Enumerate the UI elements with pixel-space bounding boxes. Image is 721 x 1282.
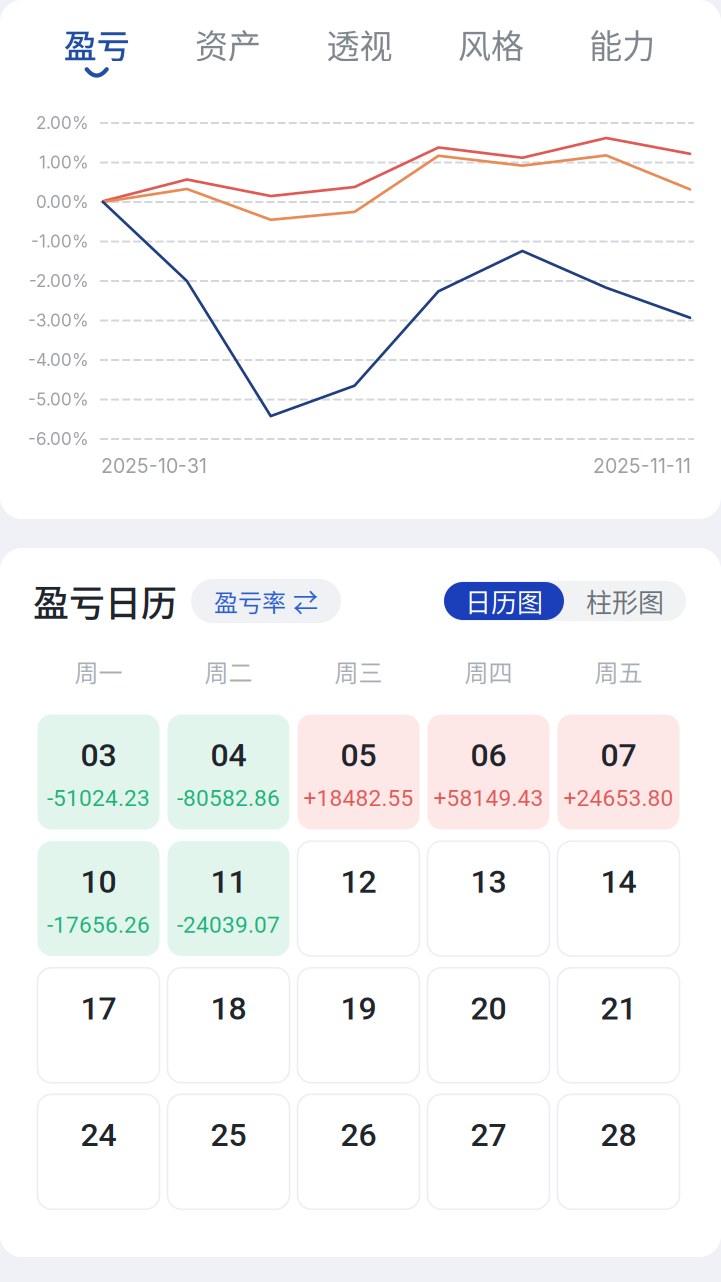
staticText: 周三 bbox=[334, 654, 382, 688]
staticText: -17656.26 bbox=[47, 912, 150, 938]
staticText: 14 bbox=[600, 863, 636, 901]
staticText: 周四 bbox=[464, 654, 512, 688]
staticText: 资产 bbox=[195, 20, 261, 68]
staticText: 2.00% bbox=[36, 112, 89, 133]
button[interactable]: 24 bbox=[37, 1094, 159, 1209]
button[interactable]: 21 bbox=[557, 968, 679, 1083]
staticText: 2025-11-11 bbox=[593, 454, 691, 478]
button[interactable]: 12 bbox=[297, 841, 419, 956]
staticText: 周一 bbox=[74, 654, 122, 688]
button[interactable]: 盈亏 bbox=[31, 0, 162, 92]
staticText: -80582.86 bbox=[177, 785, 280, 812]
button[interactable]: 日历图 bbox=[444, 582, 564, 620]
staticText: 18 bbox=[210, 990, 246, 1027]
staticText: 透视 bbox=[326, 20, 392, 68]
staticText: 06 bbox=[470, 736, 506, 774]
staticText: +58149.43 bbox=[433, 785, 543, 812]
staticText: +24653.80 bbox=[563, 785, 673, 812]
staticText: 盈亏 bbox=[64, 20, 130, 68]
staticText: -2.00% bbox=[29, 270, 89, 291]
button[interactable]: 19 bbox=[297, 968, 419, 1083]
button[interactable]: 03 bbox=[37, 714, 159, 829]
staticText: 风格 bbox=[458, 20, 524, 68]
staticText: 07 bbox=[600, 736, 636, 774]
button[interactable]: 27 bbox=[427, 1094, 549, 1209]
staticText: 0.00% bbox=[36, 191, 89, 212]
button[interactable]: 11 bbox=[167, 841, 289, 956]
button[interactable]: 13 bbox=[427, 841, 549, 956]
staticText: +18482.55 bbox=[303, 785, 413, 812]
button[interactable]: 透视 bbox=[294, 0, 425, 92]
button[interactable]: 柱形图 bbox=[564, 582, 686, 620]
staticText: 20 bbox=[470, 990, 506, 1027]
staticText: 04 bbox=[210, 736, 246, 774]
button[interactable]: 盈亏率 bbox=[191, 579, 341, 623]
staticText: 17 bbox=[80, 990, 116, 1027]
staticText: 11 bbox=[210, 863, 246, 901]
staticText: -6.00% bbox=[28, 428, 89, 449]
button[interactable]: 17 bbox=[37, 968, 159, 1083]
staticText: 盈亏率 bbox=[214, 584, 286, 618]
staticText: 1.00% bbox=[39, 152, 89, 173]
button[interactable]: 07 bbox=[557, 714, 679, 829]
button[interactable]: 资产 bbox=[162, 0, 294, 92]
button[interactable]: 28 bbox=[557, 1094, 679, 1209]
button[interactable]: 06 bbox=[427, 714, 549, 829]
button[interactable]: 10 bbox=[37, 841, 159, 956]
staticText: 19 bbox=[340, 990, 376, 1027]
staticText: 能力 bbox=[589, 20, 655, 68]
staticText: 25 bbox=[210, 1116, 246, 1154]
staticText: 05 bbox=[340, 736, 376, 774]
button[interactable]: 04 bbox=[167, 714, 289, 829]
staticText: -3.00% bbox=[28, 310, 89, 331]
staticText: 24 bbox=[80, 1116, 116, 1154]
button[interactable]: 20 bbox=[427, 968, 549, 1083]
staticText: 21 bbox=[600, 990, 636, 1027]
staticText: 03 bbox=[80, 736, 116, 774]
button[interactable]: 18 bbox=[167, 968, 289, 1083]
staticText: 日历图 bbox=[465, 582, 543, 620]
staticText: -5.00% bbox=[28, 389, 89, 410]
staticText: -24039.07 bbox=[177, 912, 280, 938]
staticText: ⇄ bbox=[293, 583, 318, 619]
staticText: -4.00% bbox=[28, 349, 89, 370]
staticText: 柱形图 bbox=[586, 582, 664, 620]
staticText: -51024.23 bbox=[47, 785, 150, 812]
staticText: 盈亏日历 bbox=[33, 575, 177, 627]
button[interactable]: 风格 bbox=[425, 0, 557, 92]
button[interactable]: 26 bbox=[297, 1094, 419, 1209]
staticText: 12 bbox=[340, 863, 376, 901]
button[interactable]: 05 bbox=[297, 714, 419, 829]
staticText: 周五 bbox=[594, 654, 642, 688]
staticText: 27 bbox=[470, 1116, 506, 1154]
staticText: 10 bbox=[80, 863, 116, 901]
button[interactable]: 能力 bbox=[557, 0, 688, 92]
button[interactable]: 14 bbox=[557, 841, 679, 956]
staticText: 28 bbox=[600, 1116, 636, 1154]
staticText: 周二 bbox=[204, 654, 252, 688]
staticText: 26 bbox=[340, 1116, 376, 1154]
staticText: 2025-10-31 bbox=[101, 454, 207, 478]
staticText: 13 bbox=[470, 863, 506, 901]
staticText: -1.00% bbox=[31, 231, 89, 252]
button[interactable]: 25 bbox=[167, 1094, 289, 1209]
